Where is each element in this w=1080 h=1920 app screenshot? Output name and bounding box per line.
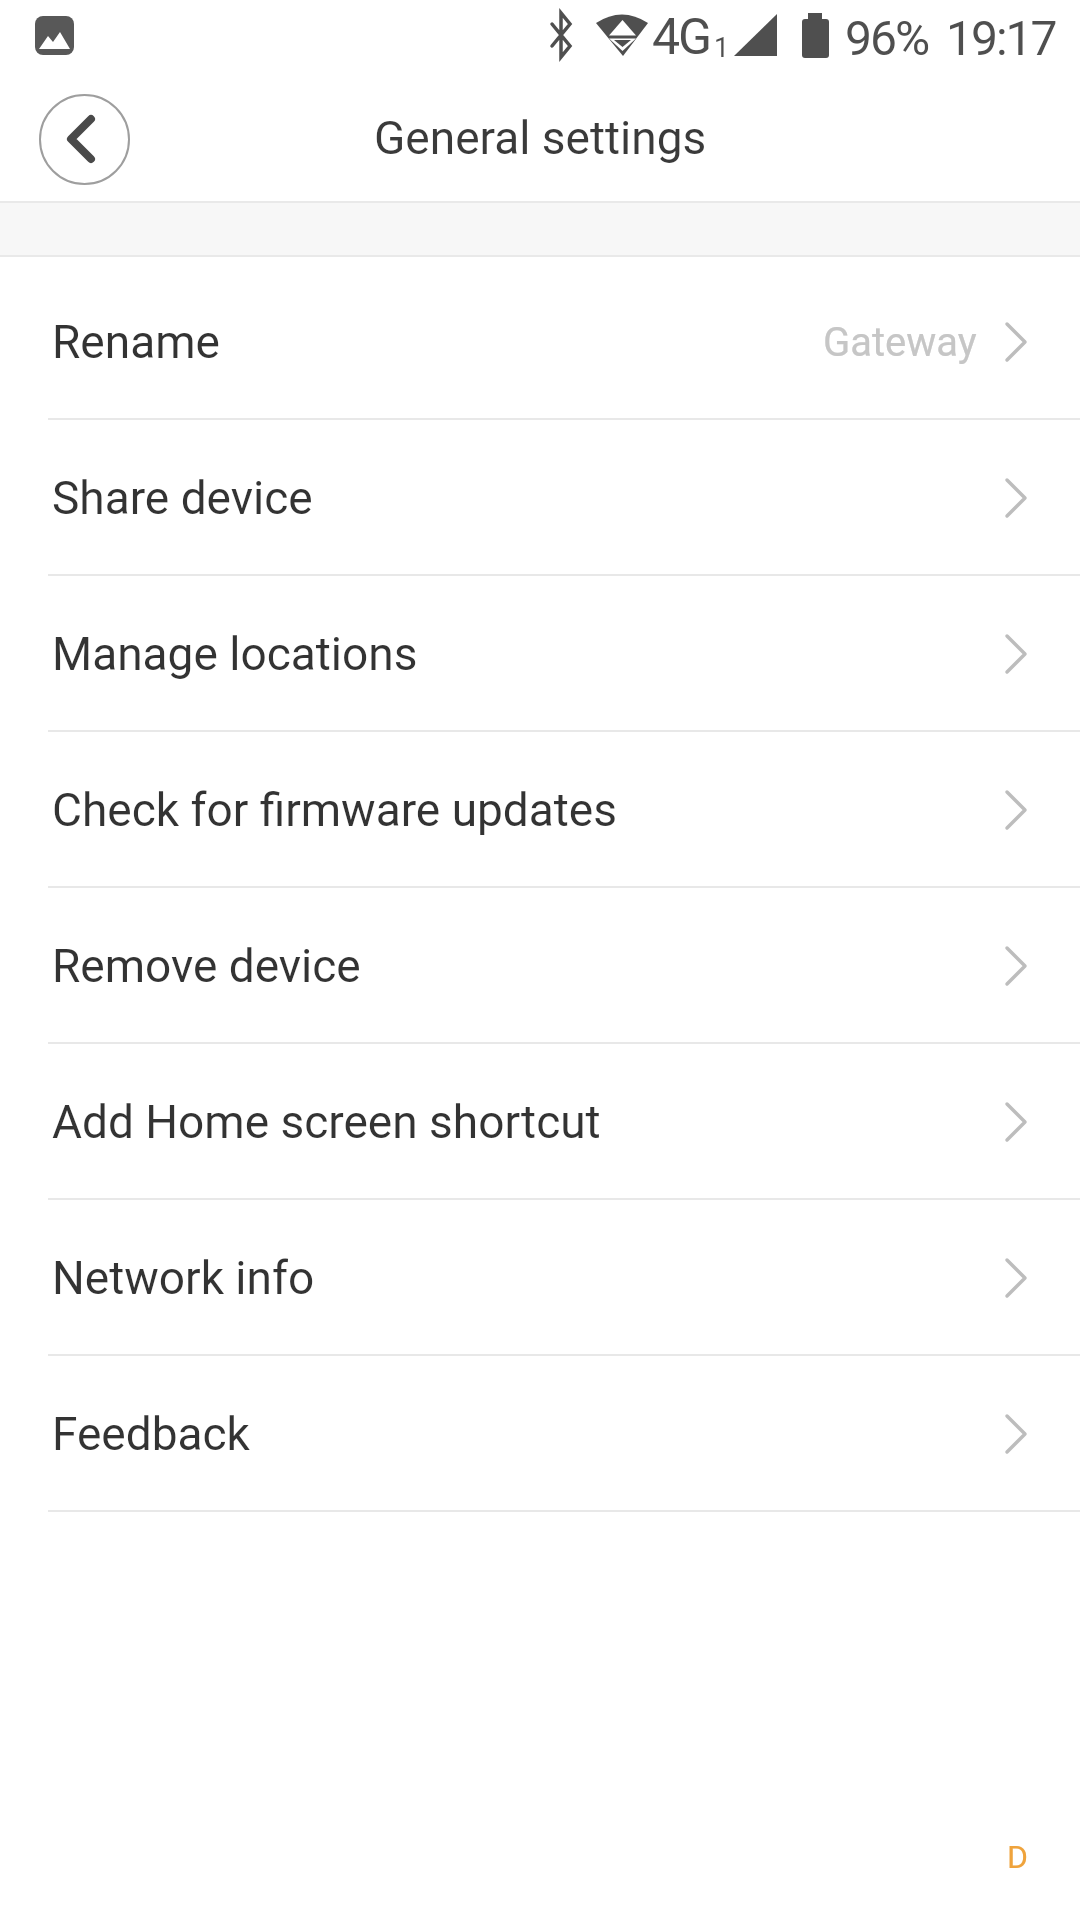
staticText: Gateway <box>823 319 977 366</box>
staticText: Feedback <box>52 1407 250 1461</box>
staticText: General settings <box>374 111 707 165</box>
button[interactable]: Check for firmware updates <box>0 732 1080 888</box>
staticText: Share device <box>52 471 313 525</box>
staticText: Check for firmware updates <box>52 783 618 837</box>
staticText: 1 <box>714 32 730 64</box>
staticText: 4G <box>652 8 711 67</box>
button[interactable]: Feedback <box>0 1356 1080 1512</box>
button[interactable] <box>39 94 130 185</box>
staticText: Network info <box>52 1251 315 1305</box>
staticText: D <box>1007 1838 1028 1876</box>
staticText: 96% <box>845 10 929 66</box>
button[interactable]: Remove device <box>0 888 1080 1044</box>
button[interactable]: Rename <box>0 264 1080 420</box>
button[interactable]: Share device <box>0 420 1080 576</box>
button[interactable]: Manage locations <box>0 576 1080 732</box>
button[interactable]: Add Home screen shortcut <box>0 1044 1080 1200</box>
staticText: Add Home screen shortcut <box>52 1095 601 1149</box>
staticText: Rename <box>52 315 220 369</box>
staticText: Remove device <box>52 939 361 993</box>
staticText: 19:17 <box>946 10 1056 66</box>
button[interactable]: Network info <box>0 1200 1080 1356</box>
staticText: Manage locations <box>52 627 418 681</box>
